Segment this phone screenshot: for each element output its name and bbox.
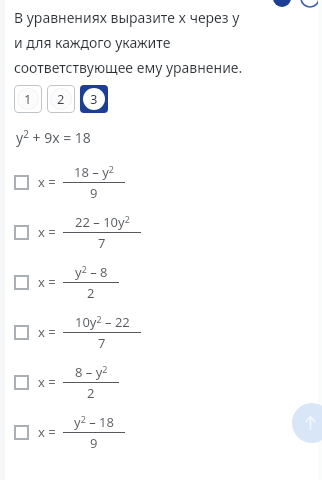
button[interactable]: x = [0, 157, 322, 207]
button[interactable]: x = [0, 207, 322, 257]
staticText: В уравнениях выразите x через y и для ка… [14, 8, 243, 77]
staticText: x = [38, 423, 56, 441]
staticText: 9 [90, 434, 98, 452]
button[interactable]: 2 [47, 85, 75, 113]
staticText: x = [38, 173, 56, 191]
staticText: 18 – y2 [74, 163, 114, 181]
staticText: 7 [98, 334, 106, 352]
button[interactable]: x = [0, 407, 322, 457]
staticText: x = [38, 223, 56, 241]
staticText: 8 – y2 [75, 363, 108, 381]
staticText: y2 + 9x = 18 [16, 127, 91, 147]
staticText: 9 [90, 184, 98, 202]
button[interactable]: Scroll to top [292, 403, 322, 443]
button[interactable]: x = [0, 257, 322, 307]
staticText: 1 [24, 90, 32, 108]
button[interactable]: 1 [14, 85, 42, 113]
staticText: y2 – 18 [74, 413, 114, 431]
staticText: x = [38, 373, 56, 391]
staticText: 3 [90, 90, 98, 108]
staticText: 2 [57, 90, 65, 108]
staticText: x = [38, 323, 56, 341]
staticText: 22 – 10y2 [75, 213, 130, 231]
staticText: x = [38, 273, 56, 291]
staticText: y2 – 8 [75, 263, 108, 281]
staticText: 7 [98, 234, 106, 252]
staticText: 2 [87, 384, 95, 402]
button[interactable]: x = [0, 357, 322, 407]
button[interactable]: 3 [80, 85, 108, 113]
staticText: 2 [87, 284, 95, 302]
staticText: 10y2 – 22 [75, 313, 130, 331]
button[interactable]: x = [0, 307, 322, 357]
